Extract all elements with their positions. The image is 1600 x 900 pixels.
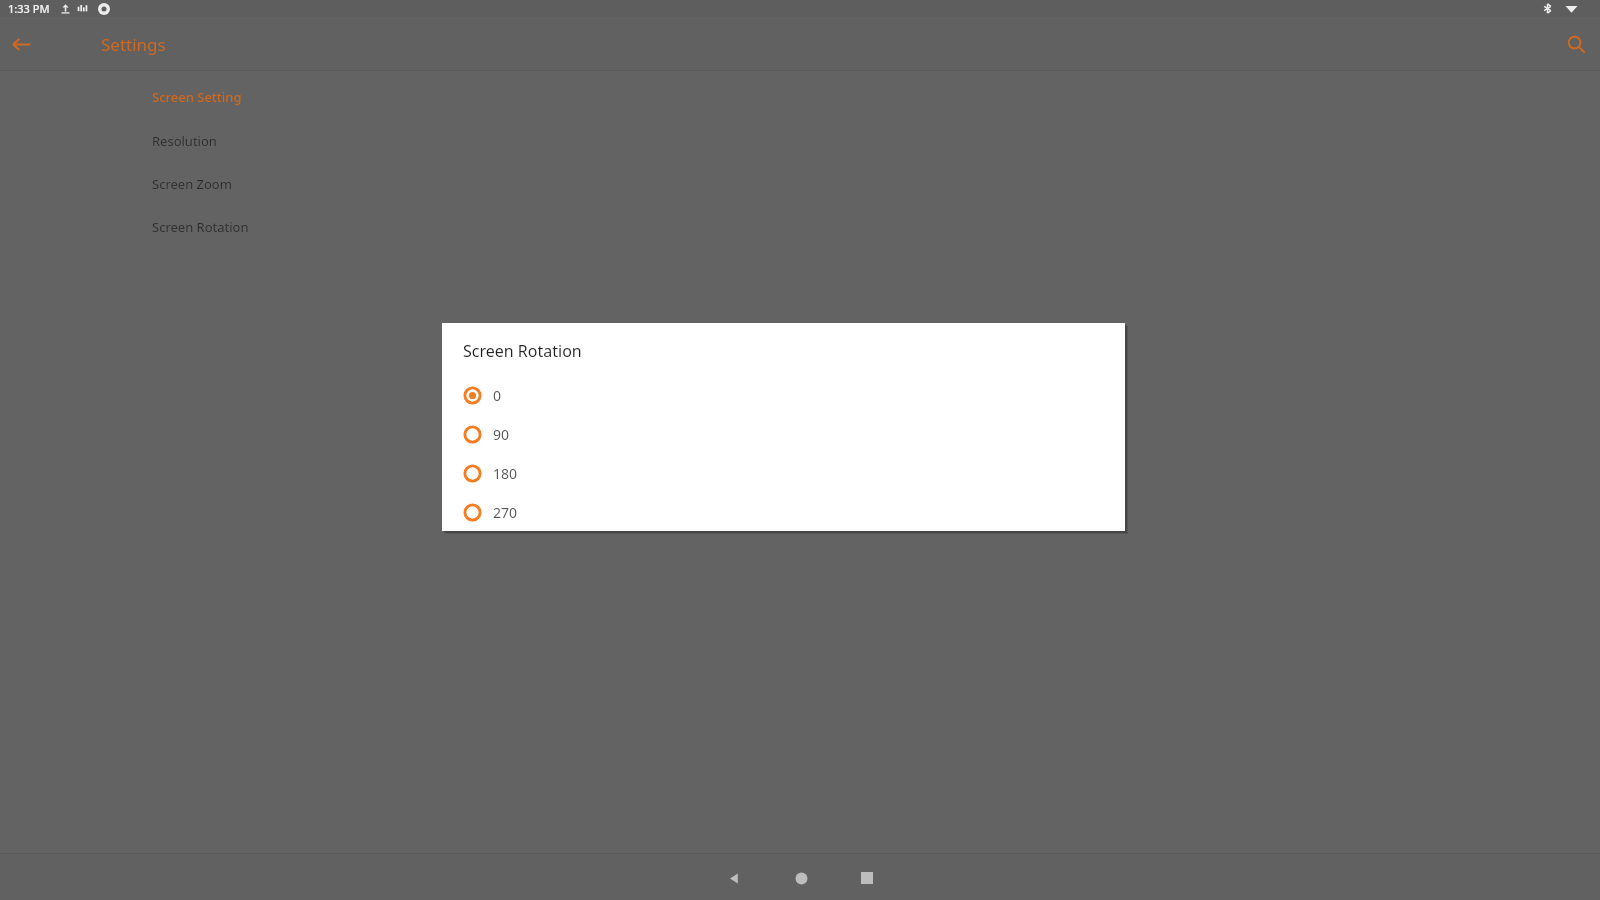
button[interactable]: Back xyxy=(4,27,38,61)
button[interactable]: Resolution xyxy=(152,126,412,156)
staticText: 0 xyxy=(493,386,502,405)
staticText: Screen Rotation xyxy=(152,218,249,236)
staticText: Screen Setting xyxy=(152,88,242,106)
staticText: 270 xyxy=(493,503,518,522)
button[interactable]: Home xyxy=(779,856,823,900)
button[interactable]: Screen Zoom xyxy=(152,169,412,199)
staticText: 180 xyxy=(493,464,518,483)
button[interactable]: 270 xyxy=(442,493,1125,532)
button[interactable]: Screen Rotation xyxy=(152,212,412,242)
staticText: Screen Rotation xyxy=(463,340,582,362)
button[interactable]: Search xyxy=(1558,26,1594,62)
button[interactable]: 180 xyxy=(442,454,1125,493)
button[interactable]: Screen Setting xyxy=(152,82,412,112)
staticText: 1:33 PM xyxy=(8,1,50,16)
button[interactable]: Back xyxy=(712,856,756,900)
staticText: Resolution xyxy=(152,132,217,150)
staticText: Screen Zoom xyxy=(152,175,232,193)
button[interactable]: 90 xyxy=(442,415,1125,454)
button[interactable]: Recent apps xyxy=(845,856,889,900)
staticText: Settings xyxy=(101,33,166,56)
staticText: 90 xyxy=(493,425,510,444)
button[interactable]: 0 xyxy=(442,376,1125,415)
